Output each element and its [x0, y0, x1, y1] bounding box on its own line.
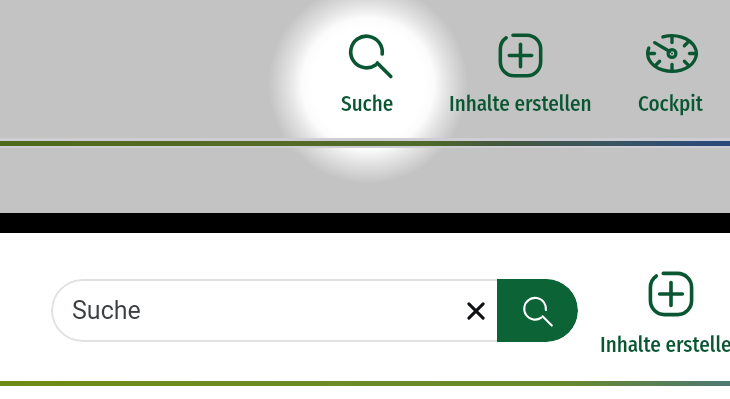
button[interactable]: Suchen — [497, 279, 578, 342]
staticText: Inhalte erstellen — [449, 91, 592, 116]
button[interactable]: Suche — [310, 18, 424, 126]
button[interactable]: Inhalte erstellen — [440, 18, 600, 126]
staticText: Suche — [72, 296, 141, 325]
button[interactable]: Suche — [51, 279, 578, 342]
staticText: Suche — [341, 91, 394, 116]
button[interactable]: Cockpit — [613, 18, 727, 126]
button[interactable]: Eingabe löschen — [460, 295, 492, 327]
staticText: Inhalte erstellen — [600, 332, 730, 357]
staticText: Cockpit — [638, 91, 703, 116]
button[interactable]: Inhalte erstellen — [551, 268, 730, 363]
